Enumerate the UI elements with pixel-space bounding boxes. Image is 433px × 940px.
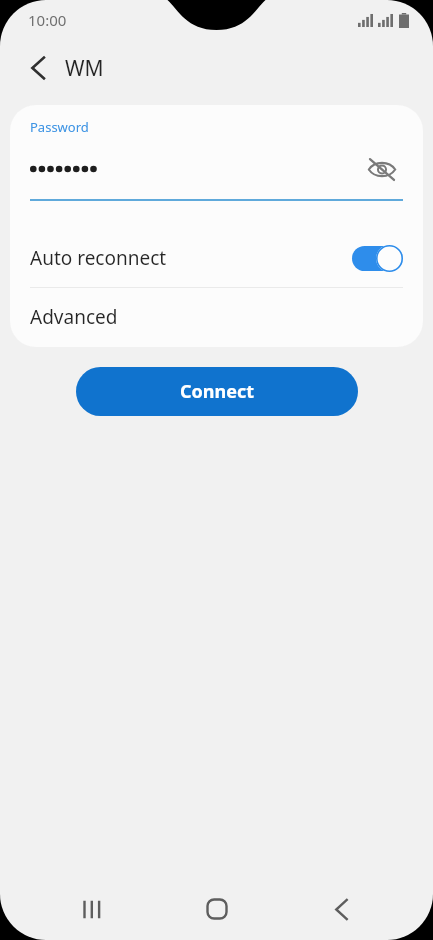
button[interactable]: Back [16, 46, 60, 90]
staticText: Auto reconnect [30, 245, 352, 271]
button[interactable]: Show password [361, 148, 403, 190]
button[interactable]: Connect [76, 367, 358, 416]
staticText: WM [65, 54, 104, 83]
button[interactable]: Auto reconnect [10, 229, 423, 287]
button[interactable]: Back [308, 884, 374, 934]
button[interactable]: Auto reconnect toggle [352, 245, 403, 272]
button[interactable]: Home [184, 884, 250, 934]
staticText: Password [30, 118, 89, 136]
button[interactable]: Recent apps [59, 884, 125, 934]
staticText: Advanced [30, 304, 118, 330]
button[interactable]: Advanced [10, 288, 423, 345]
staticText: Connect [180, 379, 255, 404]
staticText: 10:00 [28, 10, 67, 30]
button[interactable]: Password [10, 105, 423, 201]
